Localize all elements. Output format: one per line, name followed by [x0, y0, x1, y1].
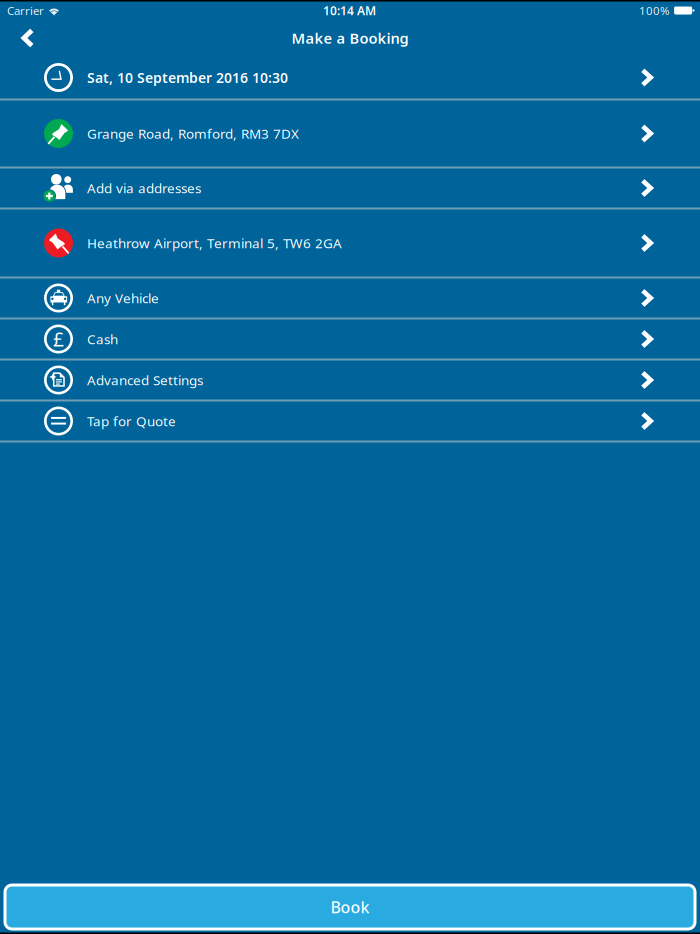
button[interactable]: Back [0, 19, 44, 57]
staticText: Book [330, 896, 369, 918]
staticText: Carrier [7, 3, 44, 18]
staticText: Add via addresses [87, 179, 201, 197]
staticText: Tap for Quote [87, 412, 176, 430]
staticText: Grange Road, Romford, RM3 7DX [87, 124, 299, 143]
staticText: Heathrow Airport, Terminal 5, TW6 2GA [87, 234, 342, 252]
staticText: 10:14 AM [323, 2, 376, 19]
button[interactable]: Grange Road, Romford, RM3 7DX [0, 100, 700, 166]
button[interactable]: Book [5, 885, 695, 929]
staticText: Any Vehicle [87, 289, 159, 307]
staticText: Cash [87, 330, 118, 348]
staticText: £ [53, 326, 64, 352]
button[interactable]: Tap for Quote [0, 401, 700, 440]
button[interactable]: Advanced Settings [0, 360, 700, 399]
staticText: Advanced Settings [87, 371, 203, 389]
button[interactable]: Heathrow Airport, Terminal 5, TW6 2GA [0, 209, 700, 276]
button[interactable]: Sat, 10 September 2016 10:30 [0, 56, 700, 98]
staticText: Sat, 10 September 2016 10:30 [87, 68, 288, 87]
button[interactable]: £ [0, 319, 700, 358]
button[interactable]: Any Vehicle [0, 278, 700, 317]
button[interactable]: Add via addresses [0, 168, 700, 207]
staticText: Make a Booking [291, 28, 408, 48]
staticText: 100% [639, 3, 670, 18]
